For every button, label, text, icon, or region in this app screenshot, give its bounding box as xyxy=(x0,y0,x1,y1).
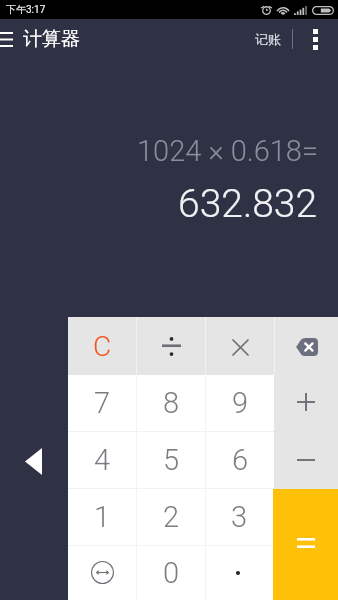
button[interactable]: 6 xyxy=(206,432,274,488)
button[interactable]: 1 xyxy=(68,489,136,545)
button[interactable]: Convert xyxy=(68,546,136,600)
button[interactable]: Divide xyxy=(137,317,205,375)
button[interactable]: Equals xyxy=(273,489,338,600)
button[interactable]: Open panel xyxy=(25,448,42,475)
button[interactable]: 记账 xyxy=(246,19,290,59)
button[interactable]: More options xyxy=(293,19,337,59)
staticText: 记账 xyxy=(255,31,281,47)
button[interactable]: 5 xyxy=(137,432,205,488)
button[interactable]: Menu xyxy=(0,19,23,59)
button[interactable]: Multiply xyxy=(206,317,274,375)
button[interactable]: Decimal point xyxy=(206,546,273,600)
staticText: 3 xyxy=(231,500,248,534)
staticText: 9 xyxy=(232,386,249,420)
button[interactable]: Plus xyxy=(274,375,338,431)
staticText: 7 xyxy=(94,386,111,420)
staticText: C xyxy=(93,330,112,363)
button[interactable]: 0 xyxy=(137,546,205,600)
staticText: 2 xyxy=(163,500,180,534)
button[interactable]: 4 xyxy=(68,432,136,488)
button[interactable]: 7 xyxy=(68,375,136,431)
staticText: 0 xyxy=(163,556,180,590)
button[interactable]: 3 xyxy=(206,489,273,545)
staticText: 8 xyxy=(163,386,180,420)
staticText: 下午3:17 xyxy=(6,3,46,16)
button[interactable]: Clear xyxy=(68,317,136,375)
staticText: 1 xyxy=(94,500,111,534)
button[interactable]: 2 xyxy=(137,489,205,545)
button[interactable]: 9 xyxy=(206,375,274,431)
staticText: 6 xyxy=(232,443,249,477)
button[interactable]: Minus xyxy=(274,432,338,488)
staticText: 632.832 xyxy=(178,181,318,227)
staticText: 5 xyxy=(163,443,180,477)
button[interactable]: Backspace xyxy=(275,317,338,375)
staticText: 1024 × 0.618= xyxy=(137,134,318,168)
button[interactable]: 8 xyxy=(137,375,205,431)
staticText: 4 xyxy=(94,443,111,477)
staticText: 计算器 xyxy=(23,27,80,51)
